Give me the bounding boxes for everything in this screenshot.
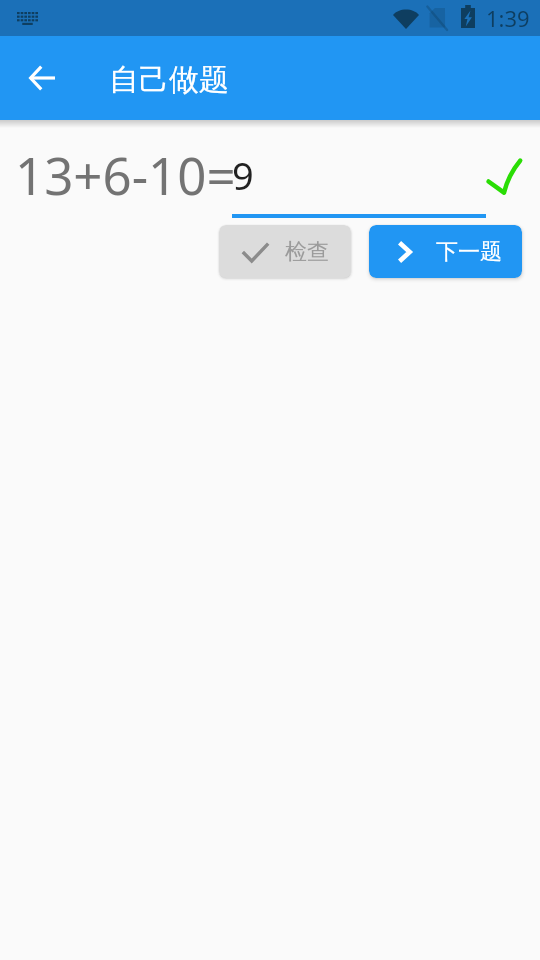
staticText: 检查 (285, 238, 329, 266)
button[interactable]: Answer input (232, 149, 486, 218)
staticText: 自己做题 (109, 61, 229, 99)
staticText: 13+6-10= (15, 140, 236, 209)
staticText: 9 (232, 149, 254, 201)
button[interactable]: 检查 (219, 225, 351, 278)
button[interactable]: 下一题 (369, 225, 522, 278)
staticText: 下一题 (436, 238, 502, 266)
staticText: 1:39 (486, 3, 530, 33)
button[interactable]: Back (18, 54, 66, 102)
